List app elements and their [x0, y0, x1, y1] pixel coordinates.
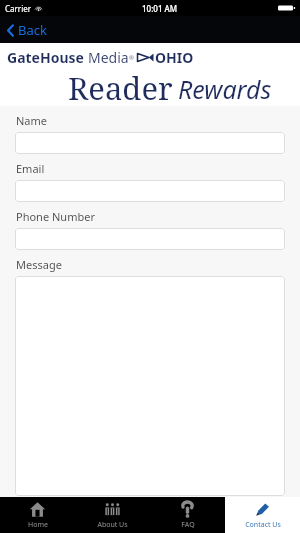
button[interactable] — [15, 276, 285, 496]
staticText: Media — [88, 48, 129, 67]
staticText: GateHouse — [7, 48, 84, 67]
button[interactable] — [15, 228, 285, 250]
button[interactable]: Home — [0, 497, 75, 533]
staticText: Email — [16, 161, 45, 176]
button[interactable]: Back — [0, 17, 59, 43]
staticText: Back — [18, 21, 47, 39]
staticText: Carrier — [5, 3, 32, 14]
staticText: Reader — [68, 67, 173, 106]
staticText: Contact Us — [245, 520, 281, 530]
button[interactable]: Contact Us — [225, 497, 300, 533]
staticText: Name — [16, 113, 48, 128]
staticText: ® — [129, 54, 134, 62]
button[interactable]: About Us — [75, 497, 150, 533]
staticText: Message — [16, 257, 62, 272]
staticText: 10:01 AM — [142, 3, 178, 14]
staticText: Home — [28, 520, 48, 530]
staticText: FAQ — [181, 520, 195, 530]
staticText: Rewards — [178, 72, 272, 106]
staticText: Phone Number — [16, 209, 95, 224]
button[interactable]: FAQ — [150, 497, 225, 533]
staticText: About Us — [97, 520, 128, 530]
button[interactable] — [15, 132, 285, 154]
button[interactable] — [15, 180, 285, 202]
staticText: OHIO — [155, 48, 194, 67]
